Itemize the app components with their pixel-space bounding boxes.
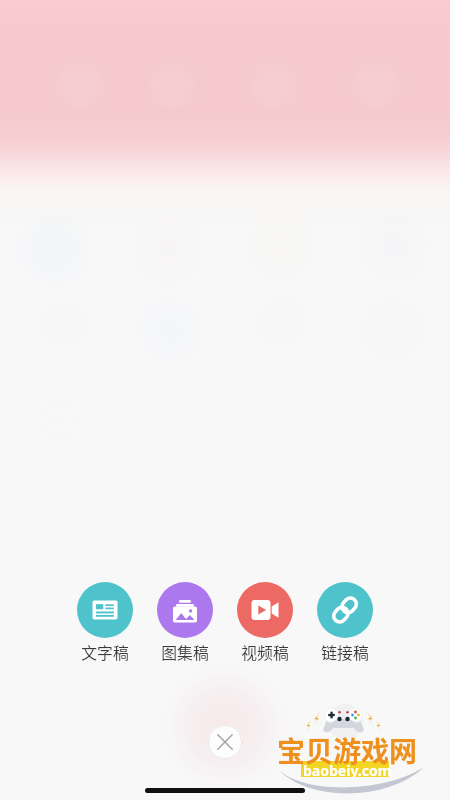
staticText: baobeiy.com: [303, 761, 392, 780]
button[interactable]: 文字稿: [65, 582, 145, 664]
staticText: 文字稿: [81, 641, 129, 664]
staticText: 链接稿: [321, 641, 369, 664]
button[interactable]: 图集稿: [145, 582, 225, 664]
staticText: 宝贝游戏网: [277, 730, 418, 771]
button[interactable]: Close: [208, 725, 242, 759]
staticText: 图集稿: [161, 641, 209, 664]
staticText: 视频稿: [241, 641, 289, 664]
button[interactable]: 视频稿: [225, 582, 305, 664]
button[interactable]: 链接稿: [305, 582, 385, 664]
